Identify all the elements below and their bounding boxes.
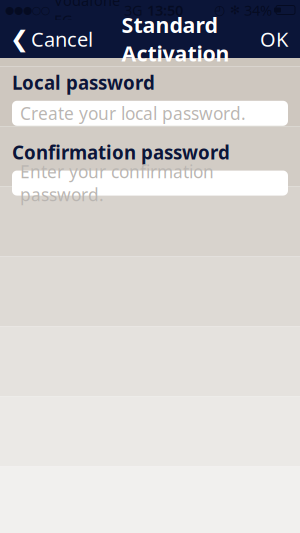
- staticText: ●●●○○: [5, 4, 50, 16]
- staticText: ◴: [214, 2, 226, 17]
- staticText: Enter your confirmation password.: [20, 160, 214, 206]
- staticText: ✻: [230, 3, 240, 17]
- staticText: OK: [260, 26, 288, 52]
- staticText: 13:50: [147, 0, 183, 20]
- staticText: Create your local password.: [20, 102, 246, 125]
- button[interactable]: Create your local password.: [12, 101, 288, 126]
- staticText: Confirmation password: [12, 140, 230, 165]
- staticText: Standard Activation: [121, 11, 229, 67]
- staticText: ❮: [10, 26, 29, 52]
- button[interactable]: OK: [252, 20, 296, 58]
- button[interactable]: ❮: [4, 20, 99, 58]
- staticText: Vodafone EG: [54, 0, 120, 29]
- button[interactable]: Enter your confirmation password.: [12, 171, 288, 196]
- staticText: Local password: [12, 70, 155, 95]
- staticText: 34%: [244, 0, 272, 20]
- staticText: Cancel: [31, 26, 93, 52]
- staticText: 3G: [124, 0, 143, 20]
